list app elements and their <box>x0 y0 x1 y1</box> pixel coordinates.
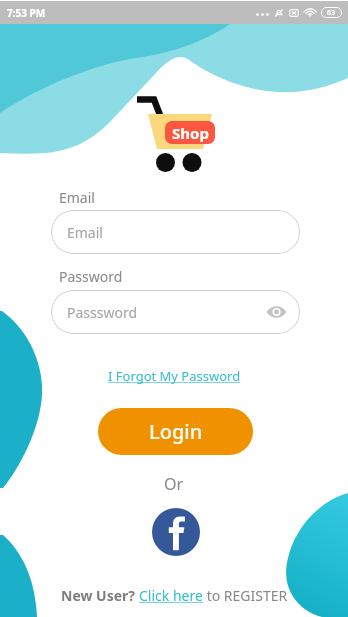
staticText: Shop <box>172 123 209 143</box>
button[interactable]: Sign in with Facebook <box>152 508 200 556</box>
button[interactable]: Passsword <box>51 290 300 334</box>
button[interactable]: Click here <box>139 586 203 605</box>
button[interactable]: I Forgot My Password <box>104 365 245 387</box>
staticText: Passsword <box>67 303 138 322</box>
staticText: 7:53 PM <box>7 6 46 20</box>
staticText: New User? <box>61 586 139 605</box>
staticText: 63 <box>327 8 336 18</box>
staticText: Email <box>59 188 95 207</box>
staticText: Password <box>59 267 123 286</box>
staticText: Login <box>149 418 203 445</box>
button[interactable]: Email <box>51 210 300 254</box>
staticText: I Forgot My Password <box>108 367 241 385</box>
button[interactable]: Login <box>98 408 253 455</box>
staticText: Click here <box>139 586 203 605</box>
staticText: Email <box>67 223 103 242</box>
button[interactable]: Show password <box>264 300 288 324</box>
staticText: Or <box>164 473 184 495</box>
staticText: to REGISTER <box>203 586 288 605</box>
